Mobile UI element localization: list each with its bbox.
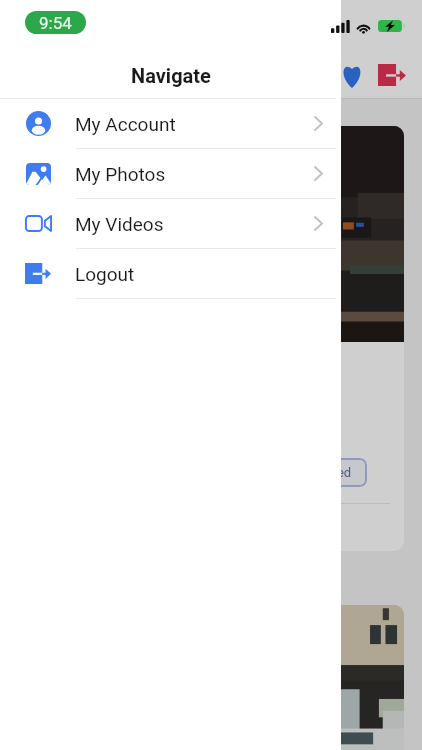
staticText: 9:54: [39, 13, 72, 33]
staticText: Logout: [75, 263, 135, 285]
staticText: My Videos: [75, 213, 164, 235]
button[interactable]: My Photos: [0, 149, 341, 198]
staticText: My Account: [75, 113, 176, 135]
staticText: Navigate: [131, 64, 211, 87]
button[interactable]: Logout: [0, 249, 341, 298]
staticText: Approved: [296, 465, 352, 480]
button[interactable]: Approved: [18, 126, 404, 551]
button[interactable]: [18, 605, 404, 750]
button[interactable]: Favorites: [334, 57, 370, 93]
staticText: My Photos: [75, 163, 166, 185]
button[interactable]: My Account: [0, 99, 341, 148]
button[interactable]: My Videos: [0, 199, 341, 248]
button[interactable]: Approved: [281, 458, 367, 487]
button[interactable]: Logout: [374, 57, 410, 93]
